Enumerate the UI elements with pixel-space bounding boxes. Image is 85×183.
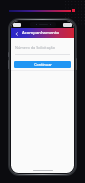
staticText: Acompanhamento [22,30,60,36]
staticText: Número da Solicitação [15,45,56,50]
button[interactable]: Continuar [14,61,71,68]
button[interactable]: Número da Solicitação [15,45,70,55]
button[interactable]: Voltar [13,30,20,37]
staticText: Continuar [34,62,52,67]
